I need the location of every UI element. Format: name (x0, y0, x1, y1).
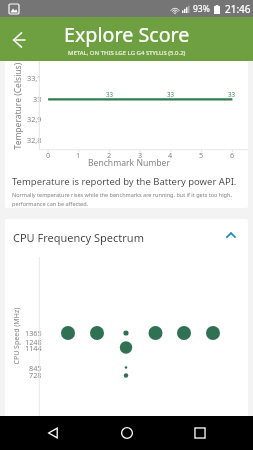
button[interactable]: Back (0, 17, 37, 61)
staticText: performance can be affected. (12, 200, 89, 207)
staticText: 0 (46, 150, 51, 160)
staticText: CPU Frequency Spectrum (13, 230, 144, 245)
button[interactable]: CPU Frequency Spectrum (5, 219, 248, 255)
staticText: 33 (106, 90, 114, 98)
button[interactable]: Collapse (218, 224, 244, 250)
staticText: 33 (167, 90, 175, 98)
staticText: 33 (228, 90, 236, 98)
staticText: 3 (138, 150, 143, 160)
staticText: 728 (29, 370, 42, 380)
staticText: 93% (193, 3, 210, 15)
staticText: Temperature (Celsius) (11, 62, 23, 149)
staticText: 1248 (25, 337, 42, 347)
button[interactable]: Back (33, 416, 73, 450)
staticText: CPU Speed (MHz) (11, 307, 21, 364)
staticText: METAL, ON THIS LGE LG G4 STYLUS (5.0.2) (68, 49, 186, 57)
staticText: 33,1 (27, 73, 42, 83)
staticText: 1365 (25, 328, 42, 338)
staticText: Temperature is reported by the Battery p… (12, 175, 237, 188)
staticText: 2 (107, 150, 112, 160)
staticText: 1144 (25, 343, 42, 353)
staticText: 33 (33, 94, 42, 104)
button[interactable]: Recents (180, 416, 220, 450)
button[interactable]: Home (107, 416, 147, 450)
staticText: 6 (230, 150, 235, 160)
staticText: Normally temperature rises while the ben… (12, 191, 232, 198)
staticText: 4 (168, 150, 173, 160)
staticText: Explore Score (64, 21, 190, 48)
staticText: 5 (199, 150, 204, 160)
staticText: 21:46 (225, 2, 251, 16)
staticText: 32,8 (27, 135, 42, 145)
staticText: 845 (29, 363, 42, 373)
staticText: Benchmark Number (88, 157, 170, 169)
staticText: 32,9 (27, 114, 42, 124)
staticText: 1 (76, 150, 81, 160)
